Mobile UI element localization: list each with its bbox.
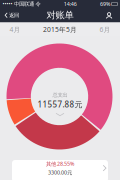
staticText: 6月 [99,25,110,34]
staticText: 对账单 [46,9,73,21]
staticText: 中国联通 [14,1,34,7]
staticText: 其他 28.55% [46,160,74,167]
button[interactable]: 6月 [93,22,117,36]
staticText: 返回 [9,12,19,19]
staticText: 3300.00元 [48,169,72,176]
button[interactable]: 4月 [3,22,27,36]
staticText: 11557.88元 [37,99,82,110]
staticText: 总支出 [52,92,67,98]
staticText: 2015年5月 [43,25,77,34]
button[interactable]: 其他 28.55% [12,160,108,180]
staticText: 14:46 [64,0,77,8]
button[interactable]: Profile [102,8,120,22]
staticText: 69% [100,0,110,8]
staticText: 令 [35,1,40,7]
staticText: 4月 [9,25,20,34]
button[interactable]: Back [0,8,22,22]
staticText: ••••• [2,0,12,8]
